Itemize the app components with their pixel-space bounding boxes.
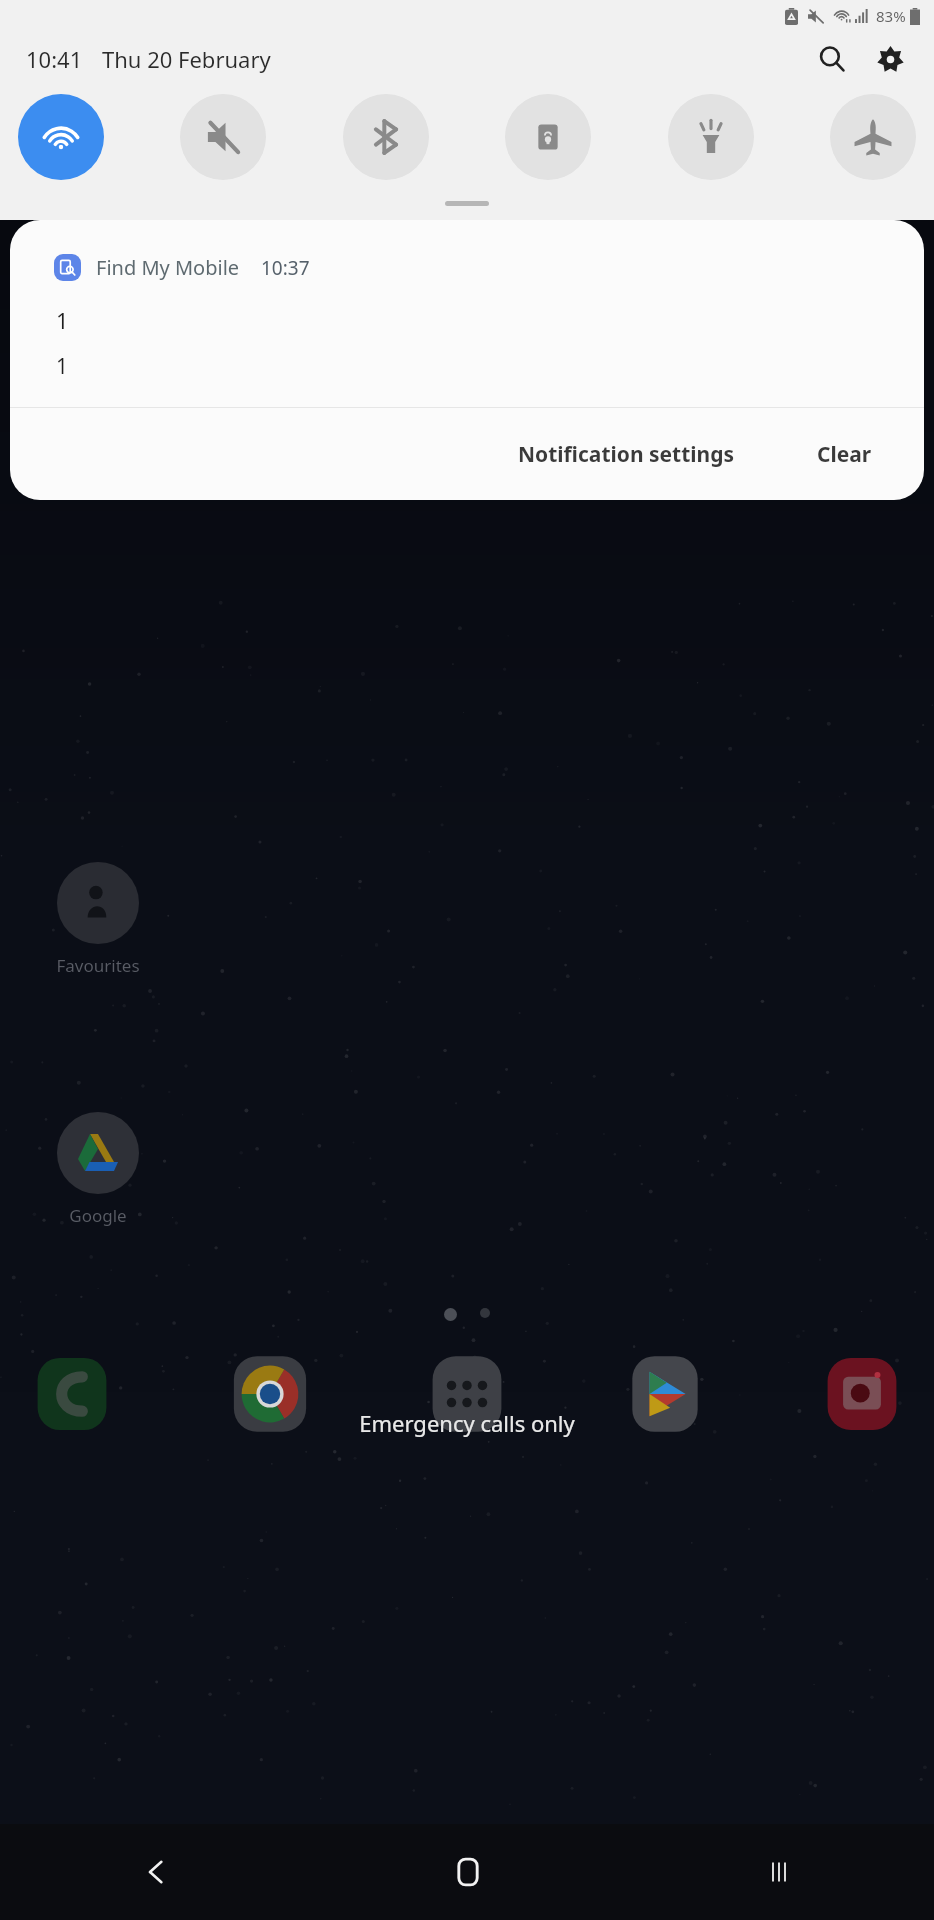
staticText: 83% (876, 6, 906, 26)
button[interactable]: Favourites (48, 862, 148, 977)
button[interactable]: Wi-Fi (18, 94, 104, 180)
button[interactable]: Google (48, 1112, 148, 1227)
button[interactable]: Bluetooth (343, 94, 429, 180)
staticText: Favourites (56, 954, 140, 977)
staticText: 10:37 (261, 255, 310, 281)
button[interactable]: Settings (868, 37, 912, 81)
staticText: Emergency calls only (0, 1408, 934, 1438)
button[interactable]: Find My Mobile (10, 220, 924, 407)
button[interactable]: Sound off (180, 94, 266, 180)
button[interactable]: Flashlight (668, 94, 754, 180)
staticText: 1 (56, 352, 69, 381)
button[interactable]: Auto rotate lock (505, 94, 591, 180)
button[interactable]: Notification settings (502, 426, 751, 483)
staticText: Clear (817, 440, 872, 469)
button[interactable]: Recents (623, 1824, 934, 1920)
button[interactable]: Chrome (224, 1348, 316, 1440)
staticText: Thu 20 February (102, 44, 271, 74)
staticText: 1 (56, 305, 69, 335)
staticText: Google (69, 1204, 127, 1227)
staticText: Notification settings (518, 440, 735, 469)
button[interactable]: Phone (26, 1348, 118, 1440)
button[interactable]: Home (312, 1824, 623, 1920)
button[interactable]: Clear (801, 426, 888, 483)
button[interactable]: Flight mode (830, 94, 916, 180)
staticText: Find My Mobile (96, 254, 240, 281)
button[interactable]: Search (810, 37, 854, 81)
button[interactable]: Camera (816, 1348, 908, 1440)
button[interactable]: Apps (421, 1348, 513, 1440)
button[interactable]: Back (0, 1824, 312, 1920)
button[interactable]: Play Store (619, 1348, 711, 1440)
staticText: 10:41 (26, 44, 83, 74)
